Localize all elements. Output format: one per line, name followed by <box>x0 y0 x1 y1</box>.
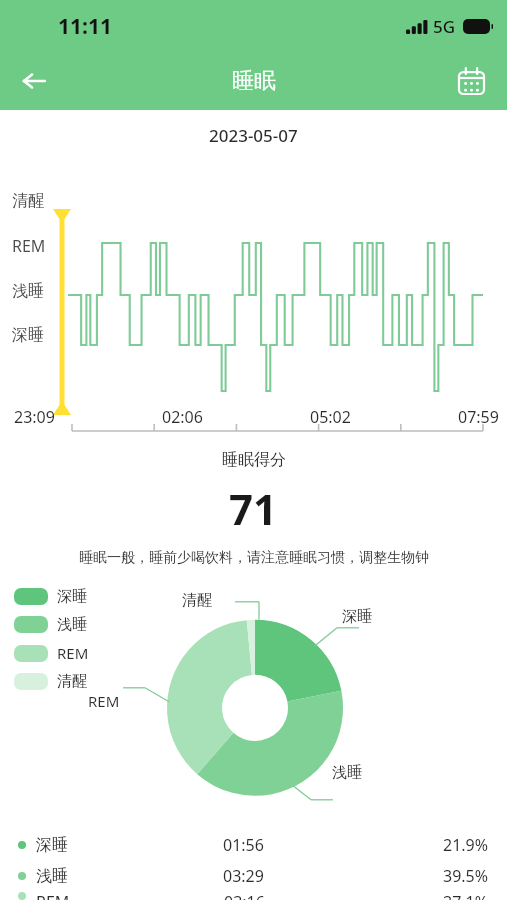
staticText: REM <box>36 891 70 900</box>
staticText: 01:56 <box>223 834 264 856</box>
button[interactable]: Back <box>12 59 56 103</box>
staticText: 2023-05-07 <box>209 124 298 147</box>
button[interactable]: 深睡 <box>0 829 507 860</box>
staticText: 深睡 <box>36 835 68 855</box>
staticText: 清醒 <box>182 591 212 610</box>
staticText: 睡眠 <box>232 67 276 95</box>
staticText: 02:06 <box>162 406 203 428</box>
staticText: 浅睡 <box>12 281 44 301</box>
staticText: 11:11 <box>58 12 112 41</box>
staticText: 浅睡 <box>36 866 68 886</box>
staticText: 深睡 <box>12 325 44 345</box>
staticText: 03:16 <box>224 891 265 900</box>
button[interactable]: 浅睡 <box>0 860 507 891</box>
staticText: 39.5% <box>443 865 489 887</box>
staticText: 21.9% <box>443 834 489 856</box>
staticText: REM <box>57 643 89 663</box>
staticText: 清醒 <box>57 672 87 691</box>
staticText: REM <box>88 691 120 711</box>
staticText: 5G <box>433 15 456 38</box>
staticText: 71 <box>229 480 278 537</box>
staticText: REM <box>12 235 46 257</box>
button[interactable]: REM <box>0 891 507 900</box>
staticText: 清醒 <box>12 191 44 211</box>
staticText: 睡眠一般，睡前少喝饮料，请注意睡眠习惯，调整生物钟 <box>79 549 429 567</box>
staticText: 睡眠得分 <box>222 450 286 470</box>
staticText: 浅睡 <box>57 615 87 634</box>
staticText: 37.1% <box>443 891 489 900</box>
staticText: 深睡 <box>342 607 372 626</box>
staticText: 23:09 <box>14 406 55 428</box>
staticText: 07:59 <box>458 406 499 428</box>
staticText: 浅睡 <box>332 763 362 782</box>
staticText: 03:29 <box>223 865 264 887</box>
button[interactable]: Calendar <box>449 59 493 103</box>
staticText: 05:02 <box>310 406 351 428</box>
staticText: 深睡 <box>57 587 87 606</box>
